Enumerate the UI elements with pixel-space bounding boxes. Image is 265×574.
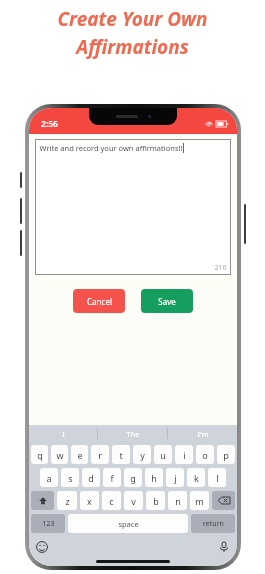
staticText: l — [216, 472, 219, 484]
button[interactable]: g — [124, 468, 142, 487]
button[interactable]: q — [31, 445, 48, 464]
button[interactable]: Write and record your own affirmations!! — [35, 139, 231, 275]
button[interactable]: I'm — [168, 425, 237, 442]
staticText: q — [37, 449, 43, 461]
staticText: 2:56 — [41, 118, 58, 130]
staticText: I'm — [197, 429, 209, 439]
button[interactable]: Backspace — [212, 491, 235, 510]
staticText: The — [126, 429, 140, 439]
staticText: m — [195, 495, 204, 507]
button[interactable]: Cancel — [73, 289, 125, 313]
button[interactable]: u — [154, 445, 172, 464]
button[interactable]: c — [102, 491, 121, 510]
staticText: h — [151, 472, 157, 484]
button[interactable]: Emoji — [36, 541, 48, 553]
staticText: g — [130, 472, 136, 484]
button[interactable]: j — [166, 468, 184, 487]
staticText: return — [203, 519, 224, 529]
button[interactable]: f — [103, 468, 121, 487]
button[interactable]: v — [124, 491, 143, 510]
button[interactable]: return — [191, 514, 235, 533]
button[interactable]: t — [112, 445, 130, 464]
button[interactable]: o — [196, 445, 214, 464]
button[interactable]: w — [51, 445, 68, 464]
staticText: r — [98, 449, 102, 461]
staticText: s — [68, 472, 73, 484]
button[interactable]: y — [133, 445, 151, 464]
staticText: i — [183, 449, 186, 461]
staticText: Create Your Own — [57, 6, 208, 32]
staticText: Affirmations — [76, 34, 189, 60]
button[interactable]: a — [40, 468, 58, 487]
button[interactable]: Dictation — [218, 541, 230, 553]
staticText: y — [140, 449, 145, 461]
staticText: a — [46, 472, 52, 484]
staticText: o — [202, 449, 208, 461]
staticText: n — [175, 495, 181, 507]
staticText: k — [194, 472, 199, 484]
staticText: e — [77, 449, 83, 461]
staticText: u — [160, 449, 166, 461]
staticText: space — [118, 519, 139, 529]
button[interactable]: p — [217, 445, 235, 464]
button[interactable]: e — [71, 445, 88, 464]
button[interactable]: Shift — [31, 491, 54, 510]
staticText: v — [131, 495, 136, 507]
button[interactable]: r — [91, 445, 109, 464]
staticText: Save — [158, 296, 176, 307]
button[interactable]: b — [146, 491, 165, 510]
staticText: x — [87, 495, 92, 507]
button[interactable]: Save — [141, 289, 193, 313]
button[interactable]: The — [98, 425, 167, 442]
staticText: b — [153, 495, 159, 507]
staticText: Write and record your own affirmations!! — [39, 143, 183, 153]
button[interactable]: 123 — [31, 514, 65, 533]
button[interactable]: l — [208, 468, 226, 487]
staticText: w — [56, 449, 64, 461]
button[interactable]: s — [61, 468, 79, 487]
button[interactable]: x — [80, 491, 99, 510]
staticText: d — [88, 472, 94, 484]
button[interactable]: n — [168, 491, 187, 510]
staticText: z — [65, 495, 70, 507]
button[interactable]: h — [145, 468, 163, 487]
staticText: p — [223, 449, 229, 461]
button[interactable]: i — [175, 445, 193, 464]
staticText: c — [109, 495, 114, 507]
staticText: j — [174, 472, 177, 484]
button[interactable]: m — [190, 491, 209, 510]
staticText: f — [110, 472, 114, 484]
staticText: t — [119, 449, 123, 461]
staticText: 123 — [42, 519, 55, 529]
button[interactable]: z — [57, 491, 77, 510]
button[interactable]: I — [29, 425, 97, 442]
button[interactable]: space — [68, 514, 188, 533]
staticText: 210 — [214, 263, 227, 273]
button[interactable]: d — [82, 468, 100, 487]
staticText: Cancel — [87, 296, 112, 307]
staticText: I — [62, 429, 65, 439]
button[interactable]: k — [187, 468, 205, 487]
